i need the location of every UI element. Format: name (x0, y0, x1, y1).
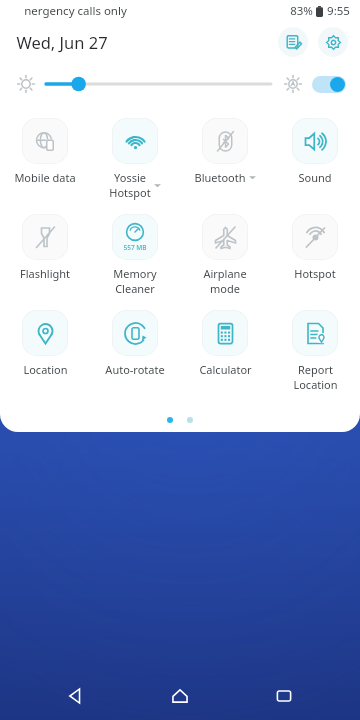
button[interactable]: Flashlight (0, 208, 90, 304)
button[interactable]: Recent apps (256, 672, 312, 720)
staticText: Bluetooth (194, 170, 246, 185)
staticText: nergency calls only (24, 3, 127, 19)
button[interactable]: Location (0, 304, 90, 400)
staticText: Sound (298, 170, 332, 185)
staticText: Wed, Jun 27 (16, 31, 108, 53)
button[interactable]: Auto-rotate (90, 304, 180, 400)
staticText: Auto-rotate (105, 362, 165, 377)
staticText: Mobile data (14, 170, 76, 185)
button[interactable]: Airplane (180, 208, 270, 304)
button[interactable]: Bluetooth (180, 112, 270, 208)
button[interactable]: Edit quick settings (278, 27, 308, 57)
button[interactable]: Auto brightness (312, 76, 346, 93)
staticText: 83% (290, 3, 313, 19)
button[interactable]: Yossie (90, 112, 180, 208)
button[interactable]: Hotspot (270, 208, 360, 304)
staticText: Hotspot (294, 266, 336, 281)
staticText: mode (210, 281, 240, 296)
button[interactable]: Mobile data (0, 112, 90, 208)
button[interactable]: Calculator (180, 304, 270, 400)
staticText: Yossie (114, 170, 146, 185)
staticText: Flashlight (20, 266, 70, 281)
button[interactable]: Sound (270, 112, 360, 208)
staticText: Airplane (203, 266, 247, 281)
staticText: Location (23, 362, 68, 377)
staticText: Cleaner (115, 281, 155, 296)
button[interactable]: 557 MB (90, 208, 180, 304)
staticText: Location (293, 377, 338, 392)
staticText: 9:55 (327, 3, 350, 19)
staticText: 557 MB (123, 243, 147, 252)
staticText: Report (298, 362, 333, 377)
button[interactable]: Settings (318, 27, 348, 57)
staticText: Hotspot (109, 185, 151, 200)
button[interactable] (46, 73, 271, 95)
staticText: Memory (113, 266, 157, 281)
staticText: Calculator (199, 362, 252, 377)
button[interactable]: Report (270, 304, 360, 400)
button[interactable]: Back (48, 672, 104, 720)
button[interactable]: Home (152, 672, 208, 720)
